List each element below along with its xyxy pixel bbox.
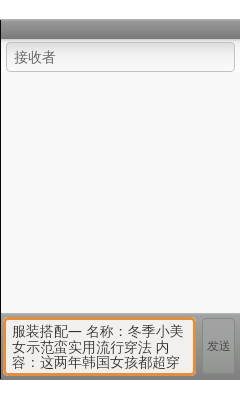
staticText: 服装搭配— 名称：冬季小美 女示范蛮实用流行穿法 内 容：这两年韩国女孩都超穿 (12, 321, 184, 371)
button[interactable]: 接收者 (6, 42, 235, 72)
staticText: 接收者 (14, 49, 56, 67)
staticText: 发送 (207, 338, 231, 353)
button[interactable]: 服装搭配— 名称：冬季小美 女示范蛮实用流行穿法 内 容：这两年韩国女孩都超穿 (3, 317, 196, 376)
button[interactable]: 发送 (202, 318, 235, 374)
